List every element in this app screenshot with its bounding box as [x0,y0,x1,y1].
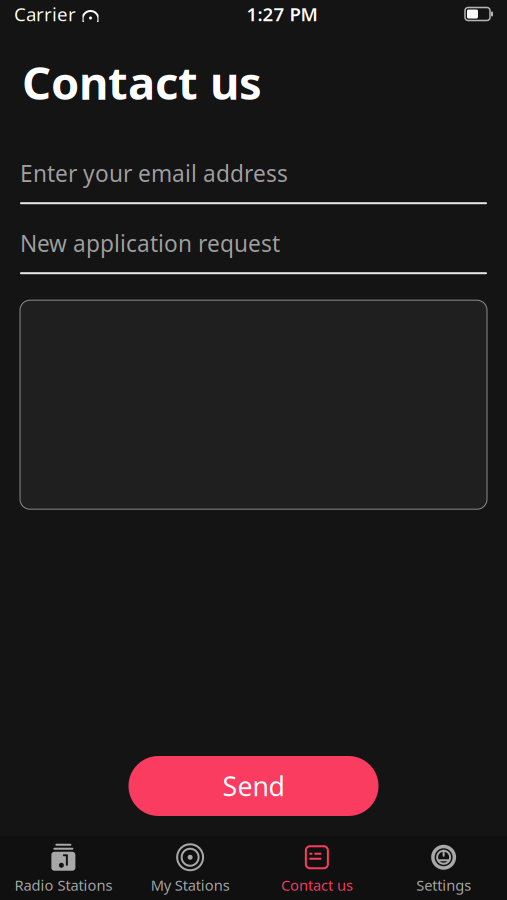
button[interactable]: My Stations [127,835,254,900]
button[interactable]: Send [128,756,378,816]
staticText: Contact us [22,52,262,112]
staticText: My Stations [151,875,230,895]
button[interactable]: New application request [20,228,487,274]
staticText: Radio Stations [14,875,112,895]
staticText: Carrier [14,2,76,26]
staticText: Enter your email address [20,158,288,188]
button[interactable] [20,300,487,509]
button[interactable]: Settings [380,835,507,900]
button[interactable]: Contact us [253,835,380,900]
staticText: Settings [416,875,471,895]
button[interactable]: Radio Stations [0,835,127,900]
staticText: New application request [20,228,280,258]
staticText: Send [222,768,284,804]
staticText: 1:27 PM [246,2,317,26]
staticText: Contact us [281,875,353,895]
button[interactable]: Enter your email address [20,158,487,204]
